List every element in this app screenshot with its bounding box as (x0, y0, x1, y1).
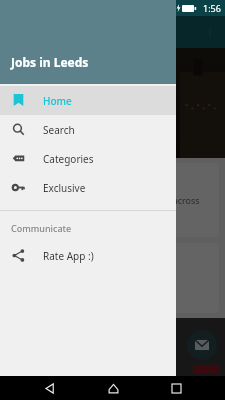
staticText: Home (43, 94, 72, 108)
staticText: Jobs in Leeds (14, 171, 95, 189)
button[interactable]: Rate App :) (0, 241, 176, 270)
button[interactable]: Search (0, 115, 176, 144)
staticText: Rate App :) (43, 249, 94, 263)
staticText: Find the best roles from our partners ac… (14, 194, 211, 218)
staticText: Exclusive (43, 181, 86, 195)
button[interactable]: Categories (0, 144, 176, 173)
button[interactable]: Home (99, 376, 127, 400)
staticText: Search (43, 123, 75, 137)
staticText: Categories (43, 152, 94, 166)
button[interactable]: Back (35, 376, 63, 400)
button[interactable]: Home (0, 86, 176, 115)
staticText: 1:56 (203, 2, 221, 14)
staticText: Jobs in Leeds (11, 54, 89, 70)
button[interactable]: Jobs in Leeds (6, 163, 219, 237)
button[interactable]: Send email (187, 330, 217, 360)
button[interactable]: Recent apps (162, 376, 190, 400)
staticText: Communicate (11, 222, 72, 234)
button[interactable] (6, 243, 219, 313)
button[interactable]: Exclusive (0, 173, 176, 202)
